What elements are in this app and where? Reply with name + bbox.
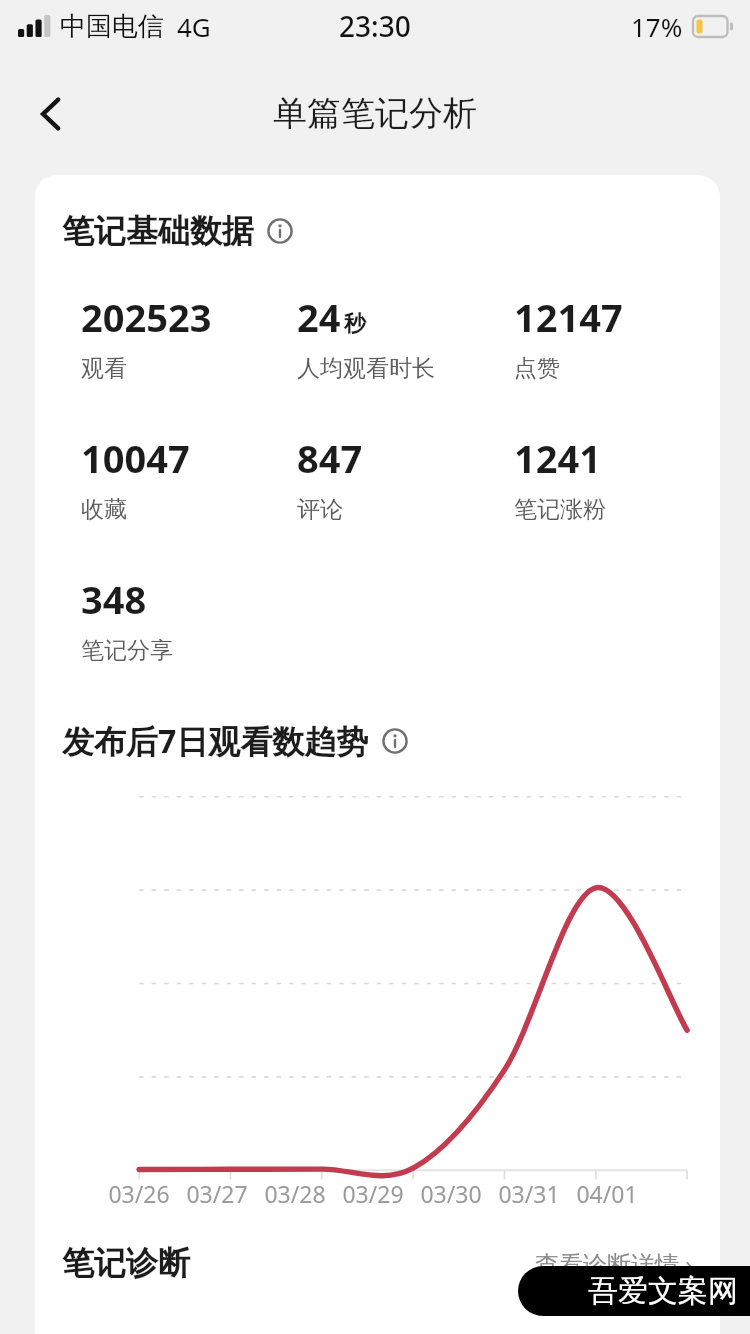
staticText: 12147 (514, 291, 623, 343)
button[interactable]: 24 (278, 273, 476, 401)
staticText: 笔记涨粉 (514, 495, 606, 524)
button[interactable]: 10047 (62, 414, 259, 542)
button[interactable]: 笔记诊断 (35, 1227, 720, 1299)
staticText: 1241 (514, 432, 601, 484)
button[interactable]: 202523 (62, 273, 259, 401)
staticText: 评论 (297, 495, 343, 524)
staticText: 人均观看时长 (297, 354, 435, 383)
staticText: 03/29 (342, 1178, 404, 1209)
button[interactable]: 1241 (495, 414, 693, 542)
staticText: 收藏 (81, 495, 127, 524)
staticText: 03/27 (186, 1178, 248, 1209)
staticText: 查看诊断详情 › (535, 1247, 693, 1280)
staticText: 04/01 (576, 1178, 638, 1209)
staticText: 17% (631, 9, 683, 44)
staticText: 23:30 (339, 7, 411, 45)
button[interactable]: 12147 (495, 273, 693, 401)
staticText: 中国电信 (60, 10, 164, 43)
staticText: 24 (297, 291, 341, 343)
staticText: 单篇笔记分析 (273, 92, 477, 135)
button[interactable]: Info (265, 216, 295, 246)
button[interactable]: Info (380, 726, 410, 756)
staticText: 202523 (81, 291, 212, 343)
staticText: 观看 (81, 354, 127, 383)
staticText: 点赞 (514, 354, 560, 383)
staticText: 348 (81, 573, 147, 625)
button[interactable]: 348 (62, 555, 259, 683)
staticText: 10047 (81, 432, 190, 484)
staticText: 03/28 (264, 1178, 326, 1209)
staticText: 03/26 (108, 1178, 170, 1209)
staticText: 发布后7日观看数趋势 (62, 719, 369, 763)
staticText: 吾爱文案网 (588, 1272, 738, 1310)
staticText: 03/31 (498, 1178, 560, 1209)
staticText: 笔记分享 (81, 636, 173, 665)
staticText: 847 (297, 432, 363, 484)
button[interactable]: Back (22, 85, 80, 143)
staticText: 笔记诊断 (62, 1243, 190, 1283)
staticText: 4G (177, 9, 211, 44)
staticText: 03/30 (420, 1178, 482, 1209)
button[interactable]: 847 (278, 414, 476, 542)
staticText: 秒 (344, 310, 366, 338)
staticText: 笔记基础数据 (62, 211, 254, 251)
